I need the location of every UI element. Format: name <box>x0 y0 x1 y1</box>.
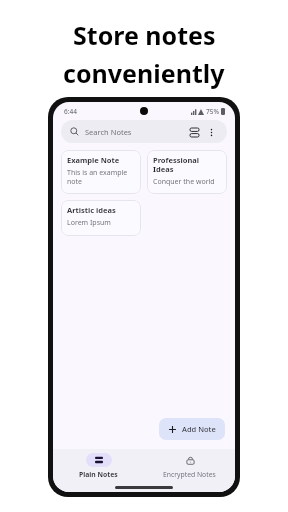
staticText: conveniently <box>63 56 225 90</box>
button[interactable]: Search <box>61 120 227 143</box>
staticText: 75% <box>206 107 219 116</box>
staticText: Professional Ideas <box>153 155 221 174</box>
button[interactable]: More options <box>204 125 218 139</box>
staticText: Plain Notes <box>79 470 118 479</box>
button[interactable]: Plain Notes <box>53 453 144 479</box>
staticText: Example Note <box>67 155 120 165</box>
button[interactable]: Encrypted Notes <box>144 453 235 479</box>
other: Search <box>70 127 79 136</box>
button[interactable]: Example Note <box>61 150 141 194</box>
staticText: This is an example note <box>67 168 135 186</box>
staticText: Add Note <box>182 424 216 434</box>
staticText: Search Notes <box>85 127 132 137</box>
staticText: Conquer the world <box>153 177 215 187</box>
staticText: Lorem Ipsum <box>67 218 111 228</box>
staticText: Artistic ideas <box>67 205 116 215</box>
staticText: Encrypted Notes <box>163 470 216 479</box>
button[interactable]: Artistic ideas <box>61 200 141 236</box>
staticText: 6:44 <box>64 107 77 116</box>
button[interactable]: Professional Ideas <box>147 150 227 194</box>
staticText: Store notes <box>73 18 216 52</box>
button[interactable]: Toggle view <box>187 125 201 139</box>
button[interactable]: Add Note <box>159 418 225 440</box>
